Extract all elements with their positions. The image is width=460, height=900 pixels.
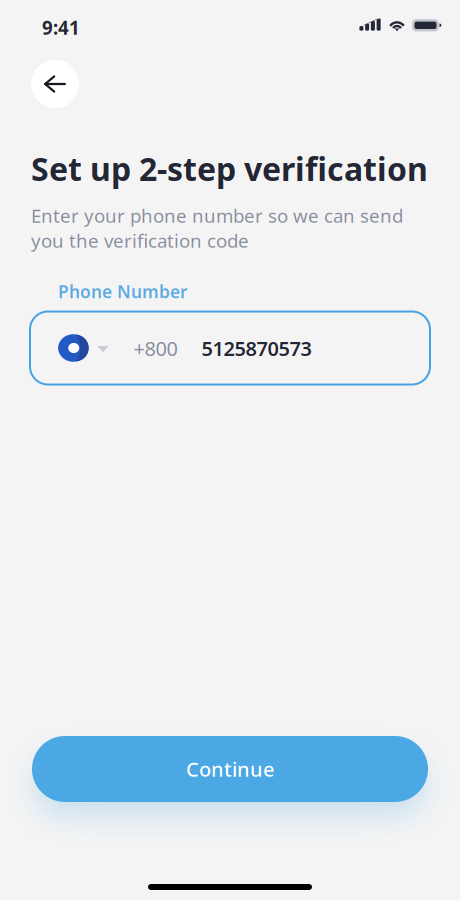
button[interactable]: Continue bbox=[32, 736, 428, 802]
button[interactable]: Back bbox=[31, 60, 79, 108]
staticText: +800 bbox=[133, 335, 177, 362]
staticText: 5125870573 bbox=[201, 335, 311, 362]
staticText: Enter your phone number so we can send y… bbox=[31, 203, 403, 253]
staticText: Phone Number bbox=[58, 280, 188, 303]
staticText: Continue bbox=[186, 756, 274, 782]
button[interactable]: +800 bbox=[30, 311, 430, 384]
staticText: 9:41 bbox=[42, 15, 80, 40]
staticText: Set up 2-step verification bbox=[31, 147, 428, 190]
